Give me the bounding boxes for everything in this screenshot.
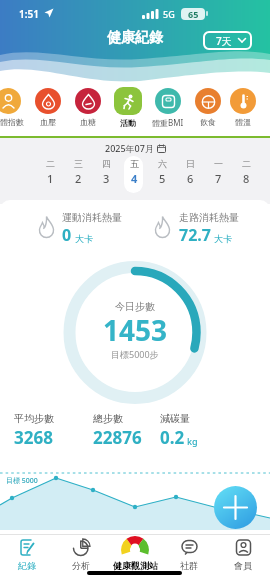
button[interactable]: 7天	[203, 31, 252, 50]
staticText: 22876	[93, 426, 142, 449]
staticText: 8	[243, 171, 250, 186]
staticText: 二	[46, 158, 55, 169]
staticText: 目標5000步	[111, 348, 159, 360]
staticText: 二	[242, 158, 251, 169]
staticText: 血壓	[40, 117, 56, 127]
staticText: 65	[188, 8, 199, 20]
button[interactable]: 三	[64, 158, 92, 186]
button[interactable]	[214, 486, 257, 529]
staticText: 目標 5000	[6, 476, 38, 486]
staticText: 0	[62, 224, 72, 246]
staticText: 今日步數	[115, 300, 155, 313]
staticText: 減碳量	[160, 412, 190, 425]
button[interactable]: 日	[176, 158, 204, 186]
staticText: 6	[187, 171, 194, 186]
staticText: 體重BMI	[152, 117, 184, 128]
staticText: 5G	[163, 8, 175, 20]
button[interactable]: 健康觀測站	[108, 537, 162, 571]
button[interactable]: 體重BMI	[148, 87, 188, 128]
button[interactable]: 六	[148, 158, 176, 186]
staticText: 4	[131, 171, 138, 186]
button[interactable]: 四	[92, 158, 120, 186]
staticText: 四	[102, 158, 111, 169]
button[interactable]: 會員	[216, 537, 270, 571]
staticText: 社群	[180, 560, 198, 571]
staticText: 會員	[234, 560, 252, 571]
button[interactable]: 血壓	[28, 87, 68, 127]
button[interactable]: 身體指數	[0, 87, 28, 127]
staticText: 三	[74, 158, 83, 169]
button[interactable]: 紀錄	[0, 537, 54, 571]
staticText: 紀錄	[18, 560, 36, 571]
button[interactable]: 一	[204, 158, 232, 186]
staticText: 1:51	[19, 7, 39, 21]
staticText: 0.2	[160, 426, 185, 449]
button[interactable]: 活動	[108, 87, 148, 128]
staticText: 走路消耗熱量	[179, 211, 239, 224]
staticText: 2025年07月	[105, 142, 154, 154]
staticText: 日	[186, 158, 195, 169]
button[interactable]: 體溫	[228, 87, 258, 127]
staticText: 健康紀錄	[107, 29, 163, 47]
staticText: 一	[214, 158, 223, 169]
staticText: 大卡	[75, 233, 93, 244]
staticText: 總步數	[93, 412, 123, 425]
staticText: 72.7	[179, 224, 211, 246]
staticText: 平均步數	[14, 412, 54, 425]
staticText: 分析	[72, 560, 90, 571]
staticText: 5	[159, 171, 166, 186]
button[interactable]: 二	[232, 158, 260, 186]
staticText: 運動消耗熱量	[62, 211, 122, 224]
staticText: kg	[187, 435, 198, 447]
button[interactable]: 分析	[54, 537, 108, 571]
staticText: 7	[215, 171, 222, 186]
staticText: 健康觀測站	[113, 560, 158, 571]
staticText: 五	[130, 158, 139, 169]
staticText: 活動	[120, 118, 136, 128]
button[interactable]: 社群	[162, 537, 216, 571]
staticText: 1	[47, 171, 54, 186]
staticText: 1453	[103, 311, 168, 349]
button[interactable]: 飲食	[188, 87, 228, 127]
staticText: 7天	[216, 34, 232, 48]
staticText: 體溫	[235, 117, 251, 127]
staticText: 2	[75, 171, 82, 186]
button[interactable]: 五	[120, 158, 148, 186]
staticText: 六	[158, 158, 167, 169]
button[interactable]: 二	[36, 158, 64, 186]
staticText: 3	[103, 171, 110, 186]
staticText: 身體指數	[0, 117, 24, 127]
staticText: 飲食	[200, 117, 216, 127]
staticText: 大卡	[214, 233, 232, 244]
staticText: 血糖	[80, 117, 96, 127]
staticText: 3268	[14, 426, 53, 449]
button[interactable]: 血糖	[68, 87, 108, 127]
